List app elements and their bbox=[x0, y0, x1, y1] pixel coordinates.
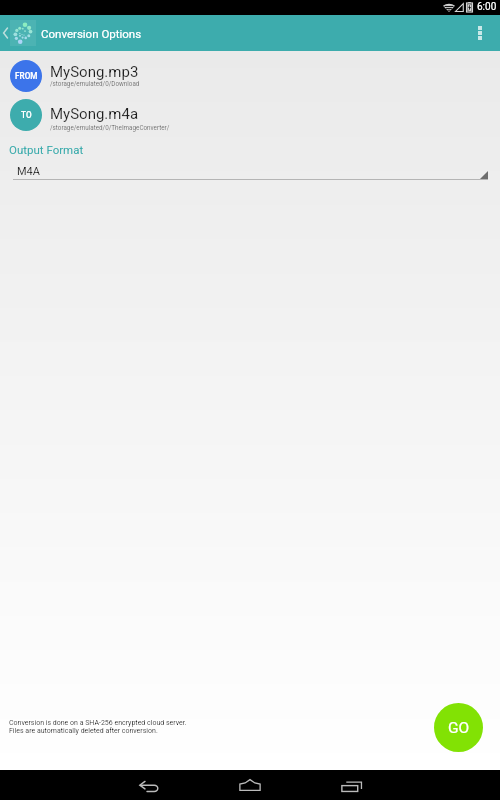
staticText: M4A bbox=[17, 165, 40, 178]
staticText: Conversion is done on a SHA-256 encrypte… bbox=[9, 719, 187, 727]
staticText: TO bbox=[21, 110, 32, 120]
staticText: MySong.mp3 bbox=[50, 63, 139, 81]
staticText: Conversion Options bbox=[41, 27, 142, 40]
staticText: FROM bbox=[15, 71, 38, 81]
button[interactable]: GO bbox=[434, 703, 483, 752]
staticText: /storage/emulated/0/TheImageConverter/ bbox=[50, 124, 170, 131]
button[interactable]: Home bbox=[220, 770, 280, 800]
staticText: /storage/emulated/0/Download bbox=[50, 80, 140, 87]
button[interactable]: Back bbox=[119, 770, 179, 800]
button[interactable]: M4A bbox=[8, 160, 500, 184]
button[interactable]: FROM bbox=[0, 60, 500, 92]
staticText: Output Format bbox=[9, 143, 84, 156]
button[interactable]: Navigate up bbox=[0, 15, 36, 51]
staticText: 6:00 bbox=[477, 1, 497, 13]
button[interactable]: More options bbox=[463, 15, 495, 51]
staticText: MySong.m4a bbox=[50, 105, 139, 123]
button[interactable]: Recent apps bbox=[322, 770, 382, 800]
staticText: Files are automatically deleted after co… bbox=[9, 727, 158, 735]
staticText: GO bbox=[448, 719, 470, 737]
button[interactable]: TO bbox=[0, 99, 500, 131]
